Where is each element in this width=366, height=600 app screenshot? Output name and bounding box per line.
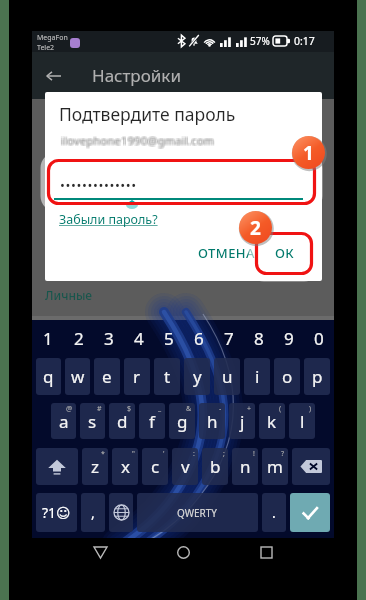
staticText: ) [309, 404, 312, 414]
button[interactable]: u [214, 358, 240, 395]
button[interactable]: 4 [124, 320, 154, 357]
button[interactable]: i [244, 358, 270, 395]
staticText: - [219, 404, 222, 414]
staticText: b [210, 455, 221, 478]
button[interactable]: Shift [36, 448, 78, 485]
button[interactable]: p [304, 358, 330, 395]
other: Enter [300, 503, 320, 523]
staticText: @ [66, 404, 73, 414]
staticText: m [267, 455, 283, 478]
button[interactable]: 3 [94, 320, 124, 357]
staticText: j [240, 410, 245, 433]
button[interactable]: q [36, 358, 61, 395]
staticText: v [181, 455, 190, 478]
staticText: ; [223, 449, 225, 459]
button[interactable]: g [169, 403, 195, 439]
other: Shift [47, 457, 67, 477]
staticText: ( [279, 404, 282, 414]
button[interactable]: l [289, 403, 315, 439]
staticText: y [193, 365, 202, 388]
other: Change language [113, 504, 130, 521]
staticText: ' [163, 449, 165, 459]
staticText: Подтвердите пароль [59, 102, 236, 126]
button[interactable]: 0 [304, 320, 334, 357]
button[interactable]: Забыли пароль? [59, 211, 158, 228]
button[interactable]: 7 [214, 320, 244, 357]
button[interactable]: ?1☺ [36, 493, 77, 532]
button[interactable]: r [124, 358, 150, 395]
button[interactable]: Change language [109, 493, 133, 532]
staticText: " [132, 449, 135, 459]
button[interactable]: y [184, 358, 210, 395]
staticText: e [102, 365, 112, 388]
button[interactable]: w [65, 358, 90, 395]
button[interactable]: Back [40, 63, 66, 89]
staticText: w [71, 365, 85, 388]
staticText: + [247, 404, 252, 414]
other: Backspace [300, 459, 322, 474]
button[interactable]: x [112, 448, 138, 485]
staticText: 4 [134, 327, 144, 350]
staticText: 2 [250, 215, 261, 241]
button[interactable]: z [82, 448, 108, 485]
staticText: k [267, 410, 277, 433]
button[interactable]: f [139, 403, 165, 439]
staticText: MegaFon [37, 33, 68, 43]
button[interactable]: 9 [274, 320, 304, 357]
staticText: 5 [164, 327, 174, 350]
button[interactable]: . [262, 493, 286, 532]
staticText: ilovephone1990@gmail.com [62, 134, 216, 149]
staticText: u [222, 365, 233, 388]
button[interactable]: k [259, 403, 285, 439]
button[interactable]: o [274, 358, 300, 395]
staticText: ilovephone1990@gmail.com [61, 134, 215, 149]
staticText: Настройки [92, 64, 181, 87]
staticText: . [272, 503, 276, 522]
staticText: 2 [74, 327, 84, 350]
staticText: ilovephone1990@gmail.com [62, 133, 216, 148]
staticText: ilovephone1990@gmail.com [60, 132, 214, 147]
staticText: QWERTY [177, 506, 218, 520]
button[interactable]: ОК [271, 237, 299, 268]
button[interactable]: , [81, 493, 105, 532]
button[interactable]: 1 [32, 320, 63, 357]
staticText: x [121, 455, 130, 478]
button[interactable]: b [202, 448, 228, 485]
button[interactable]: h [199, 403, 225, 439]
button[interactable]: v [172, 448, 198, 485]
button[interactable]: a [51, 403, 76, 439]
staticText: c [151, 455, 160, 478]
staticText: z [91, 455, 99, 478]
staticText: i [255, 365, 260, 388]
staticText: _ [158, 404, 162, 414]
button[interactable]: Back [85, 538, 115, 567]
button[interactable]: Recents [251, 538, 281, 567]
button[interactable]: n [232, 448, 258, 485]
staticText: ilovephone1990@gmail.com [60, 132, 214, 147]
button[interactable]: e [94, 358, 120, 395]
staticText: ilovephone1990@gmail.com [60, 133, 214, 148]
button[interactable]: t [154, 358, 180, 395]
staticText: •••••••••••••• [60, 176, 137, 194]
button[interactable]: ОТМЕНА [195, 237, 257, 268]
staticText: Забыли пароль? [59, 211, 158, 228]
button[interactable]: c [142, 448, 168, 485]
button[interactable]: d [109, 403, 135, 439]
button[interactable]: m [262, 448, 288, 485]
button[interactable]: 6 [184, 320, 214, 357]
button[interactable]: 5 [154, 320, 184, 357]
staticText: 8 [254, 327, 264, 350]
button[interactable]: 2 [63, 320, 94, 357]
button[interactable]: 8 [244, 320, 274, 357]
button[interactable]: Home [168, 538, 198, 567]
staticText: n [240, 455, 251, 478]
staticText: 6 [194, 327, 204, 350]
staticText: * [101, 449, 105, 459]
button[interactable]: QWERTY [137, 493, 258, 532]
button[interactable]: Backspace [292, 448, 330, 485]
button[interactable]: Enter [290, 493, 330, 532]
staticText: t [164, 365, 171, 388]
button[interactable]: j [229, 403, 255, 439]
button[interactable]: s [80, 403, 105, 439]
staticText: ilovephone1990@gmail.com [62, 132, 216, 147]
